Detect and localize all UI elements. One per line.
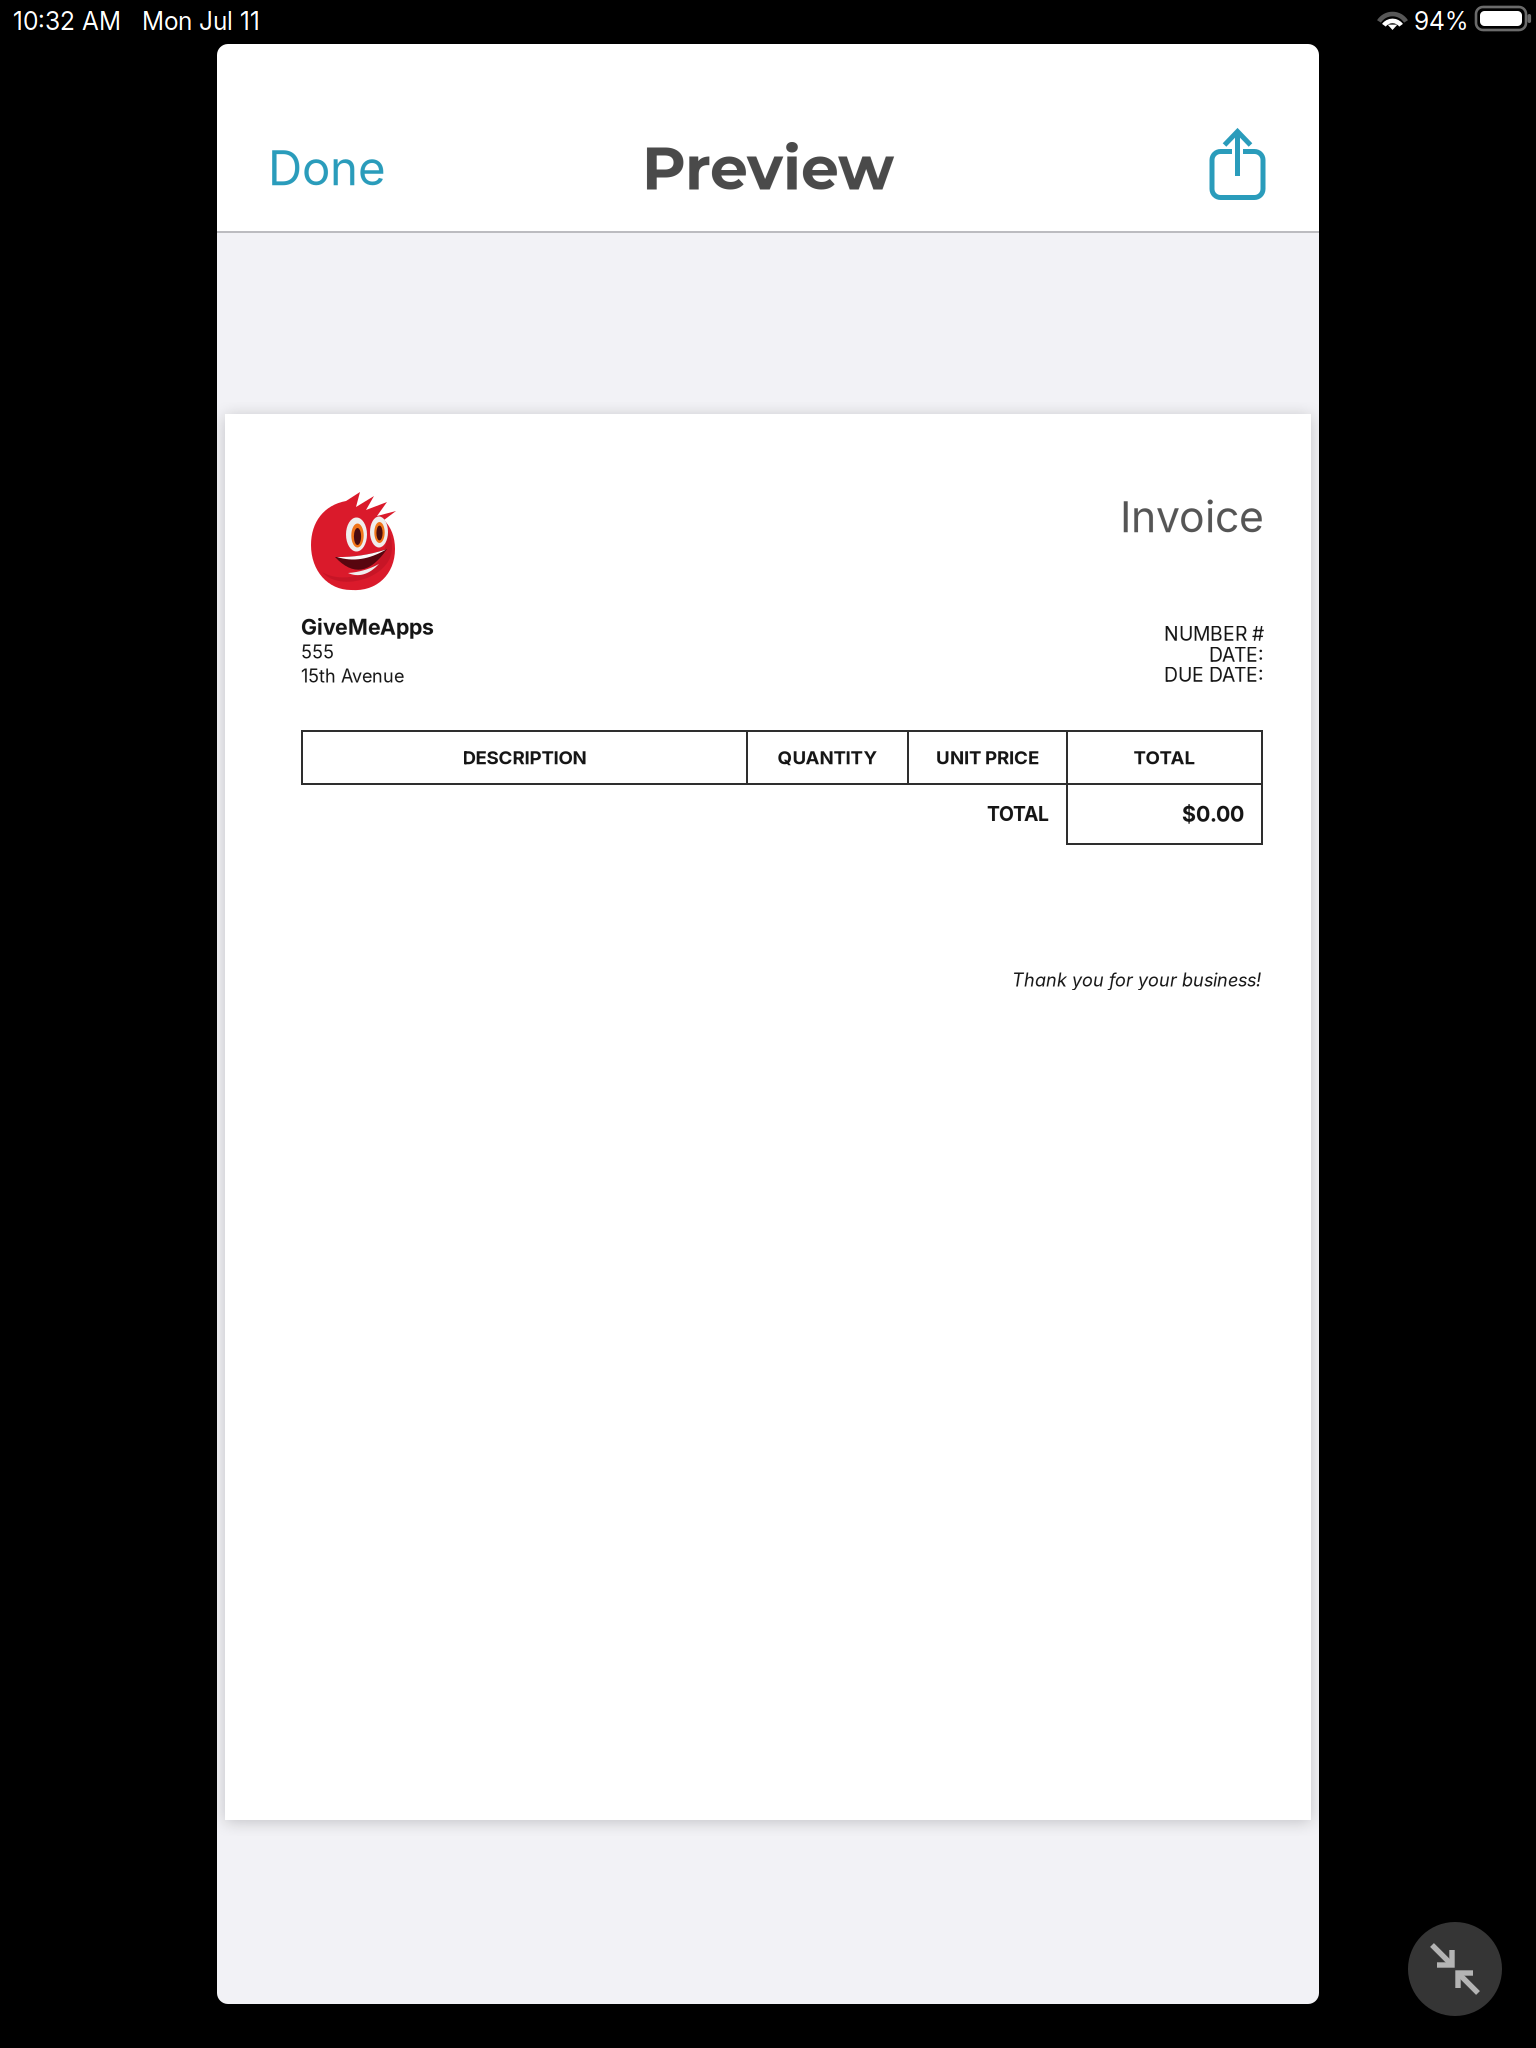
button[interactable]: Share [1190, 109, 1285, 220]
staticText: 94% [1414, 6, 1468, 36]
staticText: Preview [642, 131, 894, 204]
staticText: Invoice [1120, 491, 1264, 543]
staticText: TOTAL [987, 802, 1049, 826]
staticText: Done [268, 139, 386, 197]
staticText: DUE DATE: [1164, 663, 1264, 686]
staticText: 10:32 AM [13, 6, 121, 36]
button[interactable]: Minimize [1408, 1922, 1502, 2016]
staticText: Mon Jul 11 [142, 6, 260, 36]
staticText: QUANTITY [777, 746, 877, 769]
staticText: 555 [301, 641, 334, 663]
staticText: DESCRIPTION [462, 746, 586, 769]
staticText: GiveMeApps [301, 614, 434, 640]
staticText: $0.00 [1182, 801, 1244, 827]
staticText: NUMBER # [1164, 622, 1264, 645]
staticText: UNIT PRICE [936, 746, 1039, 769]
staticText: 15th Avenue [301, 665, 404, 687]
staticText: DATE: [1209, 643, 1264, 666]
button[interactable]: Done [268, 120, 428, 216]
staticText: Thank you for your business! [1012, 969, 1261, 991]
staticText: TOTAL [1133, 746, 1195, 769]
